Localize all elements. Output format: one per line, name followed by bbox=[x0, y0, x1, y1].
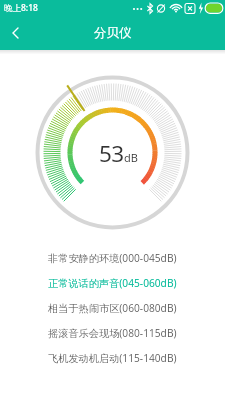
button[interactable]: 非常安静的环境(000-045dB) bbox=[0, 245, 225, 270]
staticText: 分贝仪 bbox=[94, 25, 132, 41]
staticText: dB bbox=[124, 150, 138, 165]
staticText: 摇滚音乐会现场(080-115dB) bbox=[48, 326, 177, 340]
button[interactable]: 相当于热闹市区(060-080dB) bbox=[0, 295, 225, 320]
button[interactable] bbox=[6, 23, 26, 43]
staticText: 飞机发动机启动(115-140dB) bbox=[48, 351, 177, 365]
staticText: 非常安静的环境(000-045dB) bbox=[48, 251, 177, 265]
button[interactable]: 正常说话的声音(045-060dB) bbox=[0, 270, 225, 295]
staticText: 相当于热闹市区(060-080dB) bbox=[48, 301, 177, 315]
staticText: 晚上8:18 bbox=[4, 2, 38, 14]
button[interactable]: 摇滚音乐会现场(080-115dB) bbox=[0, 320, 225, 345]
staticText: 53 bbox=[99, 138, 124, 169]
staticText: 正常说话的声音(045-060dB) bbox=[48, 276, 177, 290]
button[interactable]: 飞机发动机启动(115-140dB) bbox=[0, 345, 225, 370]
